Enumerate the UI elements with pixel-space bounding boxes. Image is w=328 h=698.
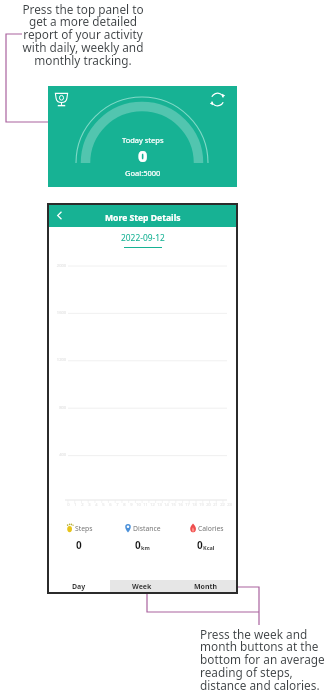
- staticText: 0: [76, 538, 82, 552]
- staticText: 23: [226, 502, 233, 507]
- staticText: 1200: [49, 357, 66, 362]
- staticText: 1600: [49, 310, 66, 315]
- staticText: 19: [198, 502, 205, 507]
- button[interactable]: Back: [47, 203, 71, 227]
- staticText: 21: [212, 502, 219, 507]
- staticText: Day: [72, 582, 86, 592]
- staticText: 16: [177, 502, 184, 507]
- staticText: 10: [135, 502, 142, 507]
- staticText: 12: [149, 502, 156, 507]
- staticText: 400: [49, 452, 66, 457]
- staticText: 17: [184, 502, 191, 507]
- staticText: 3: [86, 502, 93, 507]
- button[interactable]: Achievements: [53, 91, 70, 108]
- staticText: 7: [114, 502, 121, 507]
- staticText: 800: [49, 405, 66, 410]
- staticText: 0: [135, 538, 141, 552]
- button[interactable]: Today steps: [48, 86, 237, 187]
- staticText: Distance: [133, 524, 161, 533]
- staticText: 0: [197, 538, 203, 552]
- staticText: Press the top panel to get a more detail…: [7, 1, 159, 69]
- button[interactable]: Week: [110, 580, 174, 594]
- staticText: 18: [191, 502, 198, 507]
- staticText: 20: [205, 502, 212, 507]
- staticText: Steps: [75, 524, 93, 533]
- staticText: 0: [138, 145, 148, 167]
- button[interactable]: Refresh: [209, 91, 226, 108]
- staticText: Month: [194, 582, 218, 592]
- staticText: 6: [107, 502, 114, 507]
- staticText: 14: [163, 502, 170, 507]
- button[interactable]: Distance: [110, 505, 174, 552]
- staticText: km: [141, 544, 150, 551]
- staticText: Week: [132, 582, 152, 592]
- staticText: More Step Details: [105, 212, 181, 224]
- staticText: 2022-09-12: [121, 232, 165, 243]
- staticText: 0: [65, 502, 72, 507]
- button[interactable]: Month: [174, 580, 238, 594]
- staticText: Press the week and month buttons at the …: [200, 626, 325, 694]
- staticText: Today steps: [122, 135, 164, 145]
- button[interactable]: Day: [47, 580, 110, 594]
- staticText: 8: [121, 502, 128, 507]
- staticText: 4: [93, 502, 100, 507]
- button[interactable]: 2022-09-12: [47, 227, 238, 250]
- staticText: Calories: [198, 524, 224, 533]
- staticText: 2000: [49, 263, 66, 268]
- staticText: Kcal: [203, 544, 215, 551]
- staticText: 13: [156, 502, 163, 507]
- staticText: 9: [128, 502, 135, 507]
- staticText: 22: [219, 502, 226, 507]
- staticText: 1: [72, 502, 79, 507]
- staticText: Goal:5000: [125, 168, 161, 178]
- staticText: 2: [79, 502, 86, 507]
- staticText: 11: [142, 502, 149, 507]
- staticText: 15: [170, 502, 177, 507]
- staticText: 5: [100, 502, 107, 507]
- button[interactable]: Calories: [174, 505, 238, 552]
- button[interactable]: Steps: [47, 505, 110, 552]
